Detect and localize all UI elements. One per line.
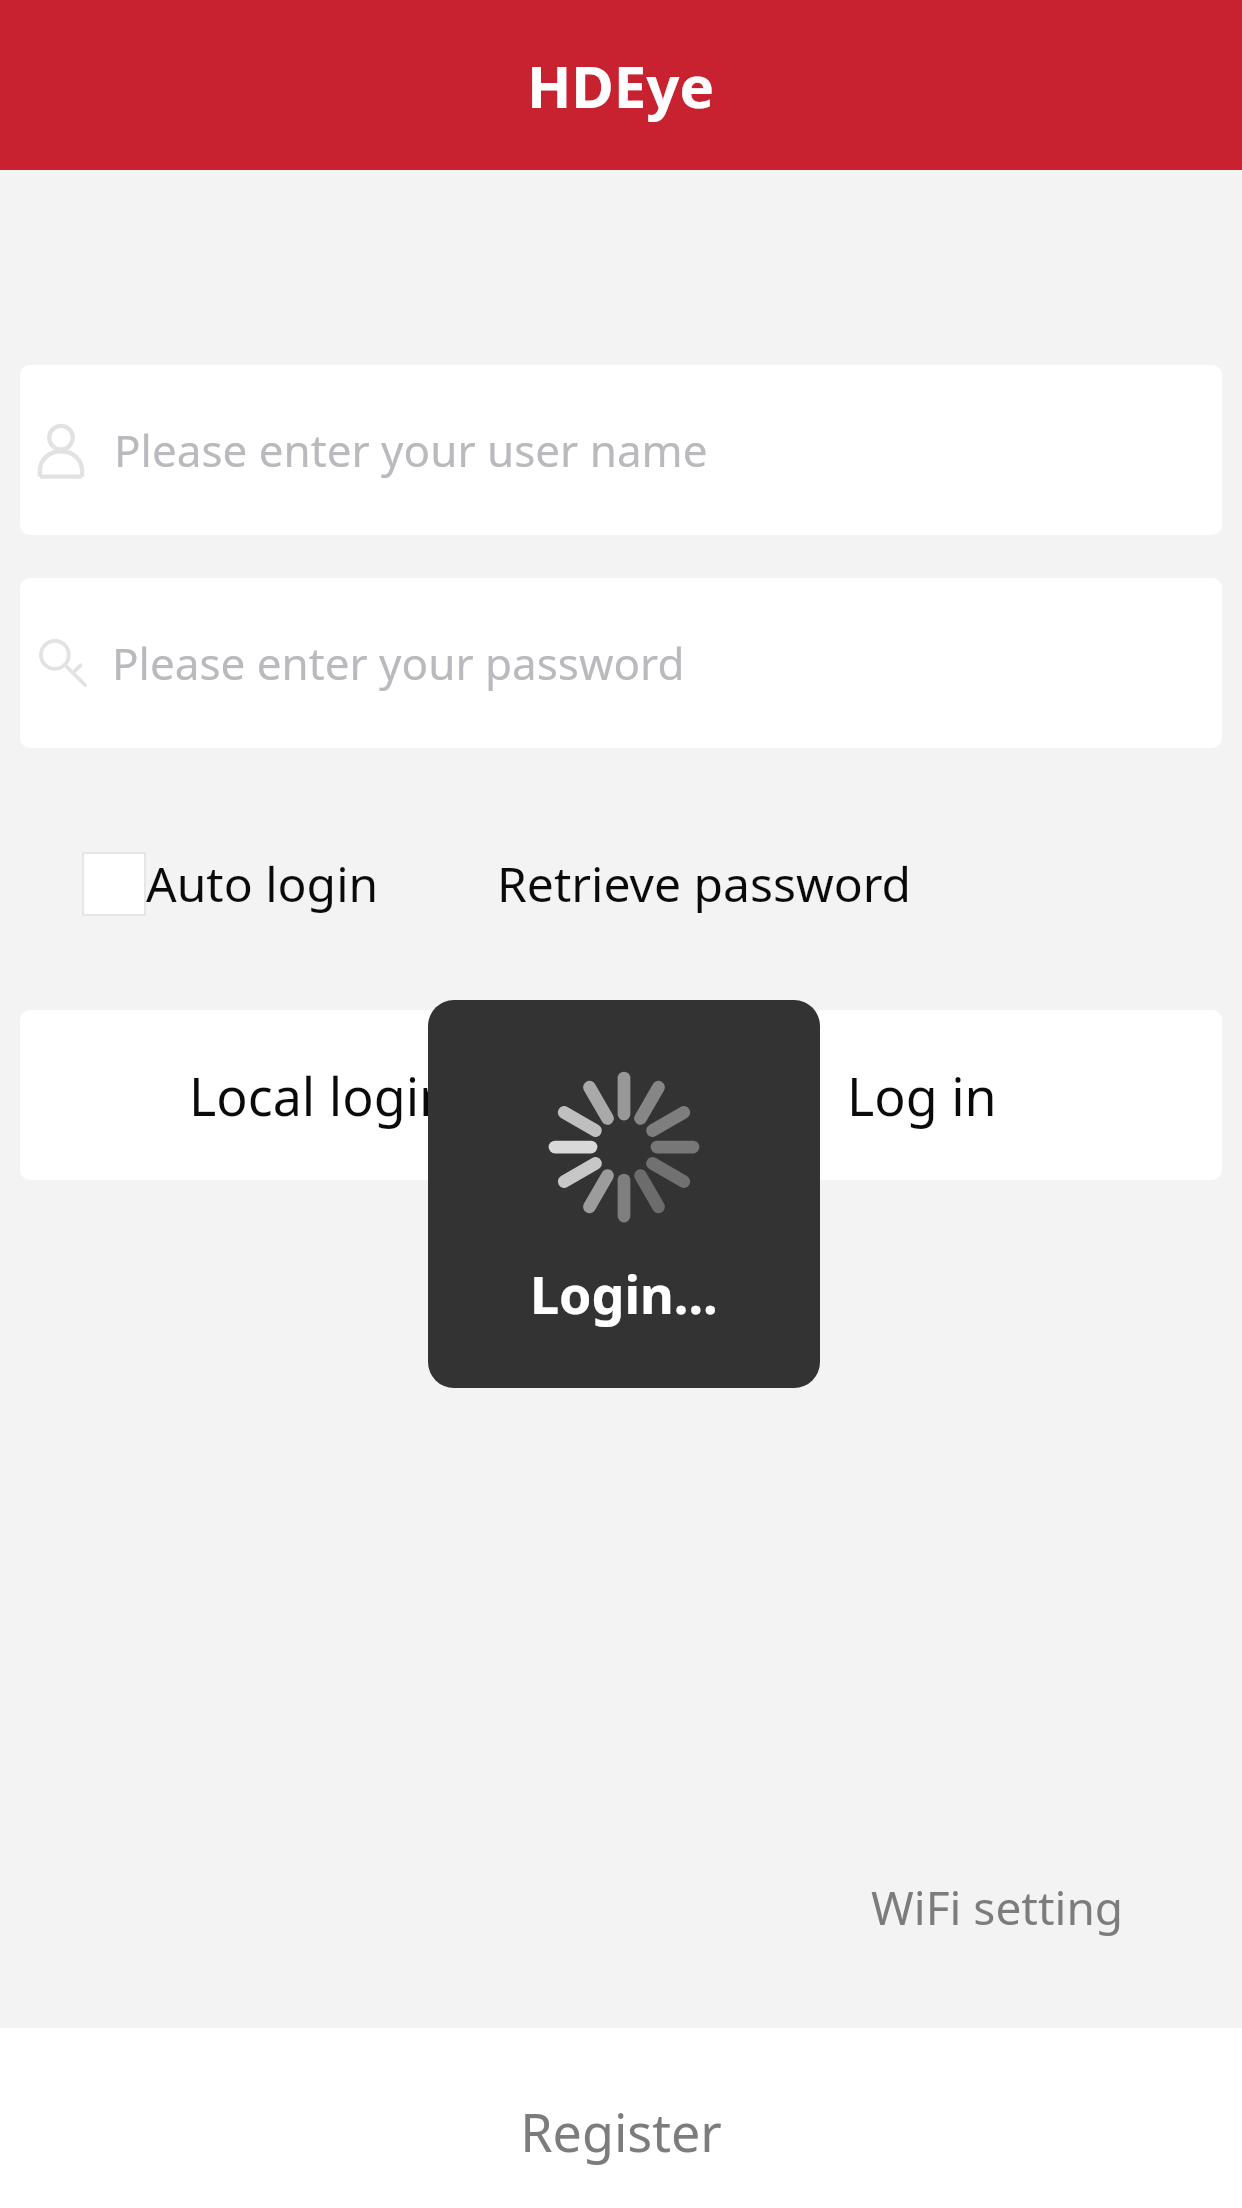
- staticText: Log in: [847, 1060, 997, 1131]
- staticText: Please enter your password: [112, 633, 685, 693]
- staticText: Retrieve password: [497, 851, 912, 916]
- button[interactable]: Register: [0, 2028, 1242, 2208]
- staticText: Please enter your user name: [114, 420, 708, 480]
- button[interactable]: Auto login: [82, 851, 379, 916]
- button[interactable]: User: [20, 365, 1222, 535]
- button[interactable]: Local login: [20, 1010, 621, 1180]
- staticText: Login...: [530, 1258, 718, 1329]
- staticText: Local login: [189, 1060, 452, 1131]
- button[interactable]: Log in: [621, 1010, 1222, 1180]
- staticText: WiFi setting: [871, 1876, 1124, 1939]
- button[interactable]: Retrieve password: [497, 851, 912, 916]
- button[interactable]: WiFi setting: [871, 1876, 1124, 1939]
- button[interactable]: Password: [20, 578, 1222, 748]
- other: Password: [34, 634, 92, 692]
- staticText: HDEye: [527, 46, 715, 125]
- staticText: Register: [520, 2096, 722, 2167]
- staticText: Auto login: [146, 851, 379, 916]
- other: User: [30, 419, 92, 481]
